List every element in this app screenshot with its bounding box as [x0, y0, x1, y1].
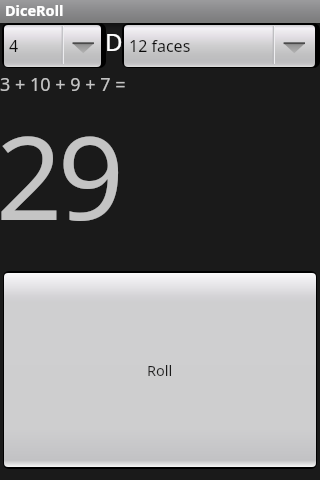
button[interactable]: Roll: [3, 271, 317, 469]
staticText: 29: [0, 96, 120, 254]
staticText: 3 + 10 + 9 + 7 =: [0, 72, 126, 97]
staticText: D: [105, 25, 123, 58]
staticText: 4: [9, 35, 19, 57]
staticText: 12 faces: [129, 35, 191, 57]
button[interactable]: 4: [2, 23, 106, 68]
button[interactable]: 12 faces: [122, 23, 320, 68]
button[interactable]: DiceRoll: [0, 0, 320, 23]
staticText: Roll: [147, 360, 173, 380]
staticText: DiceRoll: [5, 0, 64, 20]
